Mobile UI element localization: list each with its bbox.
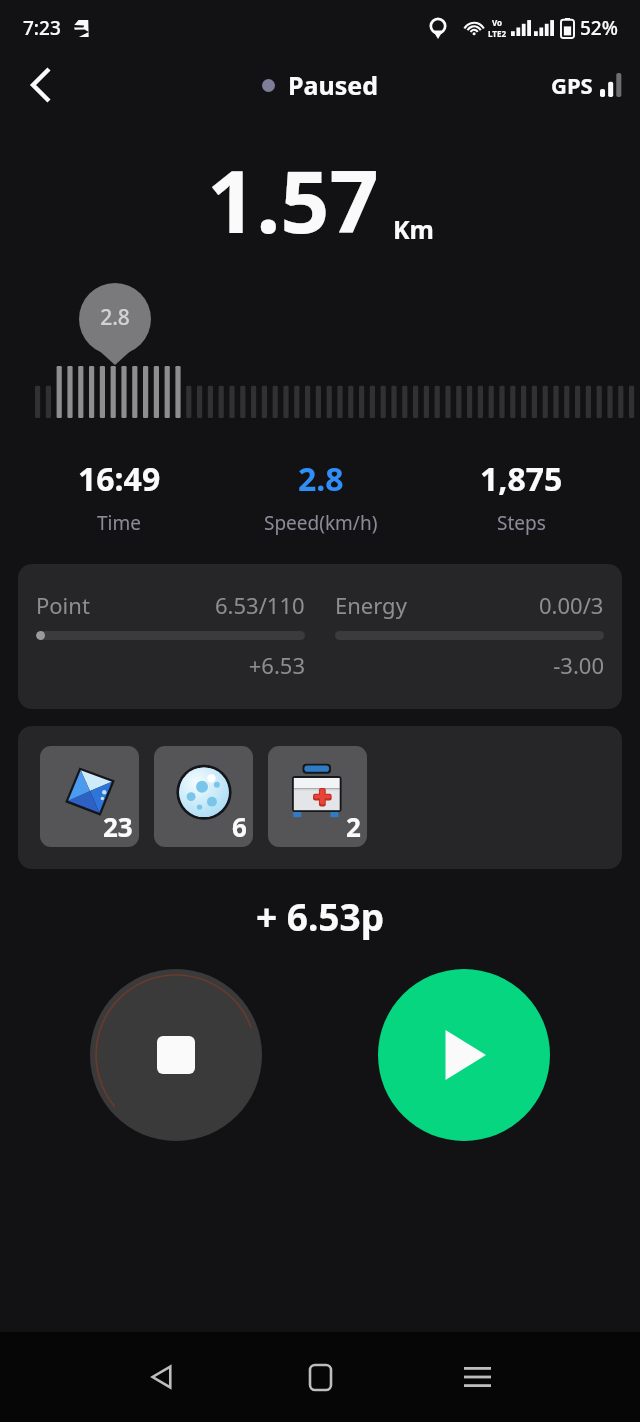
staticText: -3.00 [335, 650, 604, 680]
button[interactable]: Home [286, 1343, 354, 1411]
staticText: 2.8 [79, 303, 151, 332]
button[interactable]: Resume [378, 969, 550, 1141]
button[interactable]: Back [16, 59, 68, 111]
button[interactable]: Back [129, 1343, 197, 1411]
staticText: 16:49 [78, 457, 161, 501]
staticText: Time [97, 510, 141, 536]
staticText: 0.00/3 [539, 590, 604, 620]
staticText: 2.8 [298, 457, 344, 501]
staticText: 23 [103, 809, 133, 844]
button[interactable]: Item x6 [154, 746, 253, 847]
staticText: 6.53/110 [215, 590, 305, 620]
button[interactable]: Stop [90, 969, 262, 1141]
staticText: Paused [288, 68, 379, 102]
staticText: Steps [497, 510, 546, 536]
staticText: Point [36, 590, 90, 620]
staticText: Km [393, 212, 434, 246]
button[interactable]: GPS signal [551, 70, 622, 100]
staticText: GPS [551, 70, 593, 100]
staticText: Speed(km/h) [264, 510, 378, 536]
staticText: 2 [346, 809, 361, 844]
button[interactable]: Item x2 [268, 746, 367, 847]
button[interactable]: Item x23 [40, 746, 139, 847]
staticText: +6.53 [36, 650, 305, 680]
staticText: Vo [492, 17, 503, 28]
staticText: 52% [580, 15, 618, 41]
staticText: 1,875 [480, 457, 563, 501]
button[interactable]: Recent apps [443, 1343, 511, 1411]
staticText: 1.57 [207, 141, 379, 258]
staticText: Energy [335, 590, 407, 620]
staticText: + 6.53p [0, 891, 640, 941]
staticText: LTE2 [488, 28, 506, 39]
staticText: 7:23 [23, 15, 61, 41]
staticText: 6 [232, 809, 247, 844]
button[interactable]: Point [18, 564, 622, 709]
